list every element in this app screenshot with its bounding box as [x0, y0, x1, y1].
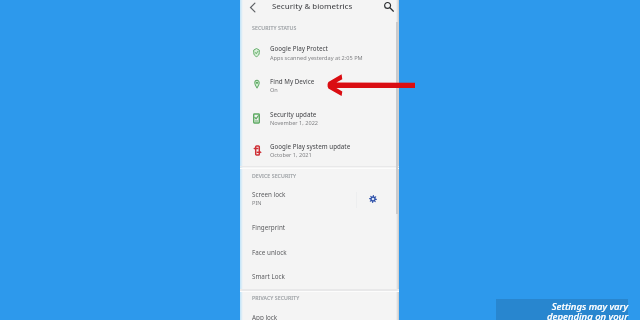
staticText: Apps scanned yesterday at 2:05 PM — [270, 54, 363, 62]
staticText: Smart Lock — [252, 272, 285, 281]
staticText: DEVICE SECURITY — [252, 172, 297, 179]
staticText: SECURITY STATUS — [252, 24, 297, 31]
button[interactable] — [240, 103, 399, 129]
staticText: PRIVACY SECURITY — [252, 294, 300, 301]
button[interactable] — [240, 37, 399, 63]
staticText: Security & biometrics — [272, 1, 353, 12]
button[interactable] — [240, 135, 399, 161]
button[interactable] — [240, 184, 356, 209]
button[interactable] — [240, 308, 399, 320]
staticText: Settings may vary depending on your — [492, 300, 628, 320]
staticText: Fingerprint — [252, 223, 286, 232]
button[interactable]: Screen lock settings — [363, 189, 382, 208]
staticText: Find My Device — [270, 77, 315, 85]
staticText: Google Play Protect — [270, 44, 328, 52]
staticText: Google Play system update — [270, 142, 351, 150]
staticText: App lock — [252, 313, 278, 320]
staticText: PIN — [252, 199, 262, 207]
button[interactable] — [240, 264, 399, 288]
staticText: October 1, 2021 — [270, 151, 312, 159]
button[interactable] — [240, 240, 399, 264]
button[interactable]: Back — [244, 0, 260, 15]
staticText: November 1, 2022 — [270, 119, 319, 127]
staticText: Face unlock — [252, 248, 287, 257]
button[interactable] — [240, 70, 399, 96]
button[interactable]: Search — [380, 0, 396, 16]
staticText: On — [270, 86, 278, 94]
staticText: Screen lock — [252, 190, 286, 199]
staticText: Security update — [270, 110, 317, 118]
button[interactable] — [240, 215, 399, 239]
